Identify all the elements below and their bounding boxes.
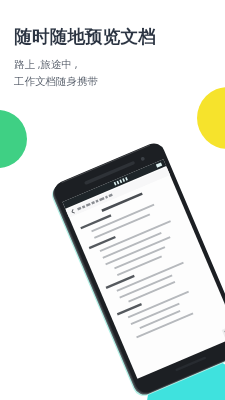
staticText: 随时随地预览文档: [14, 26, 156, 48]
button[interactable]: Preview documents anywhere: [0, 160, 225, 400]
staticText: 工作文档随身携带: [14, 75, 98, 88]
staticText: 路上 ,旅途中 ,: [14, 57, 78, 71]
